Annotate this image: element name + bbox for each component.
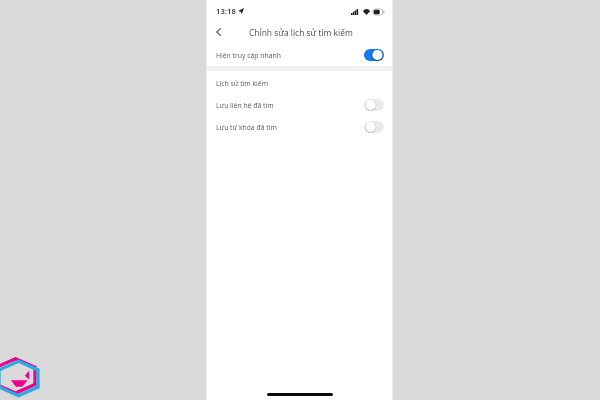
button[interactable]: Turn on xyxy=(364,121,384,133)
staticText: Chỉnh sửa lịch sử tìm kiếm xyxy=(249,27,353,38)
staticText: Lưu từ khóa đã tìm xyxy=(216,123,277,132)
staticText: Lưu liên hệ đã tìm xyxy=(216,101,274,110)
staticText: Lịch sử tìm kiếm xyxy=(216,79,269,88)
button[interactable]: Lưu từ khóa đã tìm xyxy=(207,116,392,138)
staticText: 13:18 xyxy=(216,6,236,17)
button[interactable]: Turn off xyxy=(364,49,384,61)
button[interactable]: Back xyxy=(209,23,227,41)
button[interactable]: Turn on xyxy=(364,99,384,111)
staticText: Hiện truy cập nhanh xyxy=(216,51,281,60)
button[interactable]: Lưu liên hệ đã tìm xyxy=(207,94,392,116)
button[interactable]: Hiện truy cập nhanh xyxy=(207,44,392,66)
